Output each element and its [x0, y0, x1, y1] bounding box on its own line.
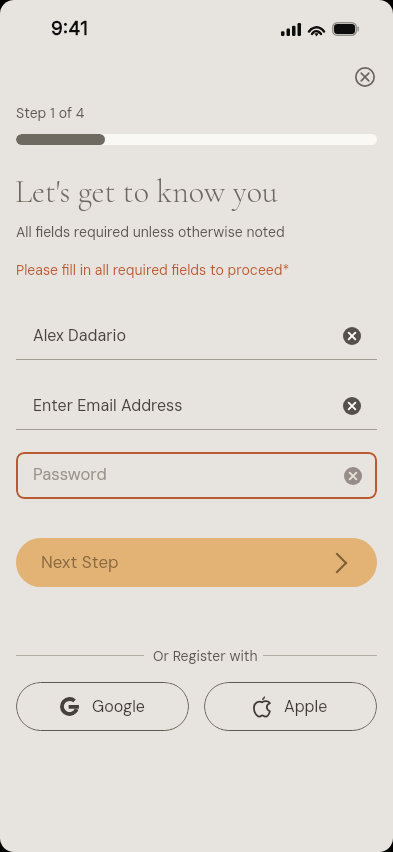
staticText: All fields required unless otherwise not…: [16, 223, 285, 241]
button[interactable]: Clear password: [342, 465, 364, 487]
button[interactable]: Clear Enter Email Address: [341, 395, 363, 417]
staticText: Enter Email Address: [33, 395, 341, 416]
staticText: Google: [92, 696, 145, 717]
staticText: Let's get to know you: [15, 172, 278, 211]
staticText: Please fill in all required fields to pr…: [16, 261, 290, 279]
staticText: Or Register with: [153, 647, 258, 665]
button[interactable]: Google: [16, 682, 189, 731]
button[interactable]: Clear Alex Dadario: [341, 325, 363, 347]
staticText: Next Step: [41, 551, 119, 573]
staticText: Password: [33, 464, 342, 485]
button[interactable]: Enter Email Address: [16, 389, 377, 430]
staticText: Step 1 of 4: [16, 104, 85, 122]
button[interactable]: Alex Dadario: [16, 319, 377, 360]
button[interactable]: Close: [351, 63, 379, 91]
button[interactable]: Next Step: [16, 538, 377, 587]
staticText: 9:41: [51, 17, 88, 40]
staticText: Apple: [284, 696, 328, 717]
button[interactable]: Apple: [204, 682, 377, 731]
staticText: Alex Dadario: [33, 325, 341, 346]
button[interactable]: Password: [16, 452, 377, 499]
